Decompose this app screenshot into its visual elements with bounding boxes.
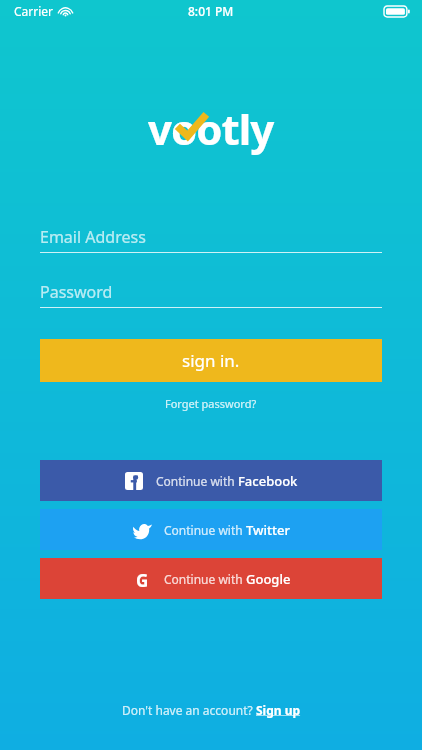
button[interactable]: G	[40, 558, 382, 599]
staticText: Password	[40, 281, 113, 303]
staticText: Facebook	[238, 472, 298, 490]
staticText: Carrier	[14, 3, 54, 19]
staticText: G	[136, 569, 149, 589]
button[interactable]: Continue with	[40, 509, 382, 550]
button[interactable]: Forget password?	[161, 392, 261, 415]
staticText: Google	[246, 570, 291, 588]
staticText: Continue with	[156, 473, 238, 489]
button[interactable]: Password	[40, 277, 382, 307]
staticText: 8:01 PM	[188, 3, 234, 19]
button[interactable]: Email Address	[40, 222, 382, 252]
button[interactable]: Continue with	[40, 460, 382, 501]
staticText: vootly	[148, 100, 274, 157]
button[interactable]: sign in.	[40, 339, 382, 382]
staticText: sign in.	[182, 349, 240, 372]
staticText: Email Address	[40, 226, 146, 248]
staticText: Continue with	[164, 571, 246, 587]
staticText: Sign up	[256, 702, 301, 718]
staticText: Forget password?	[165, 396, 257, 411]
staticText: Twitter	[246, 521, 290, 539]
staticText: Continue with	[164, 522, 246, 538]
button[interactable]: Don't have an account?	[116, 698, 307, 722]
staticText: Don't have an account?	[122, 702, 256, 718]
